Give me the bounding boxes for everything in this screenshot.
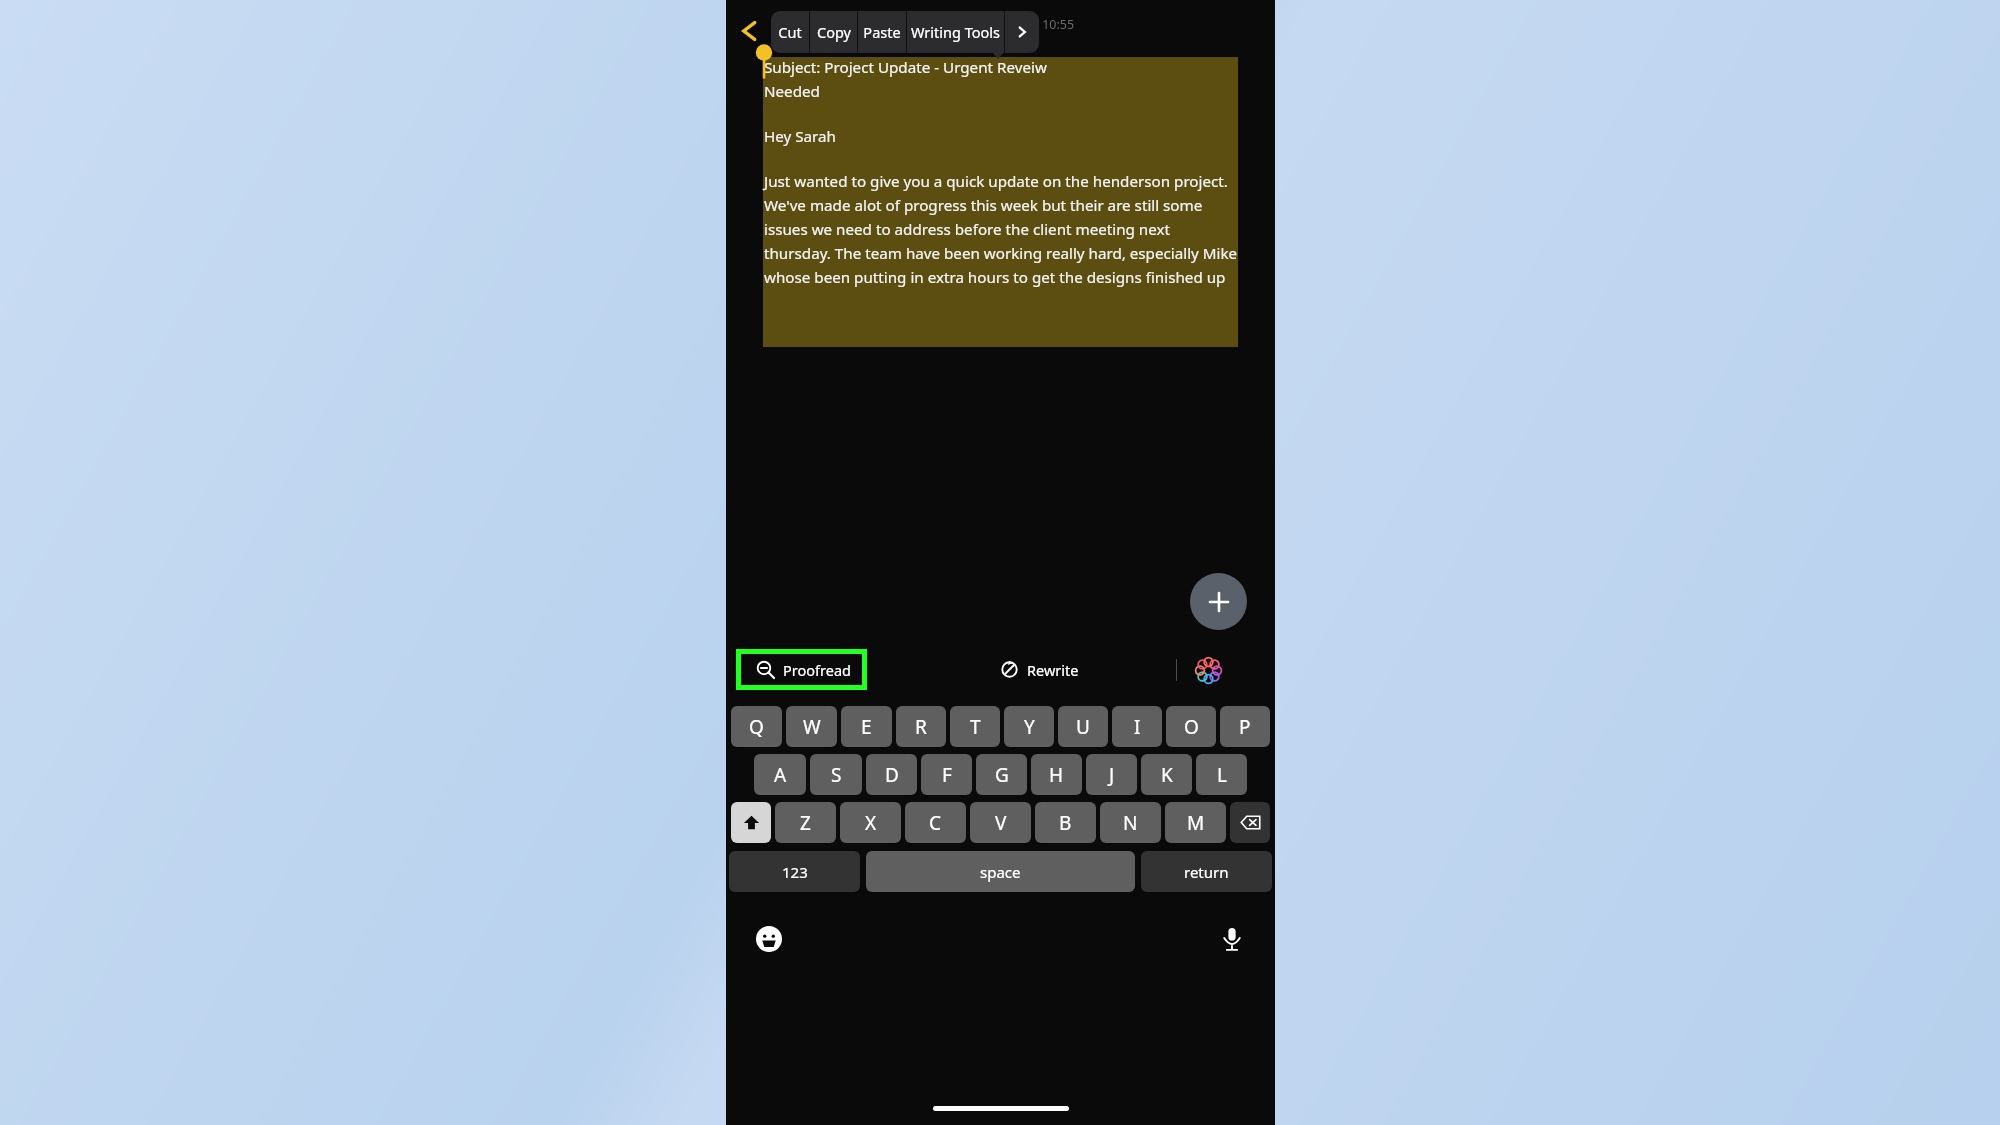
staticText: Writing Tools [911,22,1000,42]
button[interactable]: G [976,754,1027,795]
staticText: I [1134,714,1141,740]
staticText: N [1123,810,1138,836]
button[interactable]: S [810,754,862,795]
button[interactable]: Y [1004,706,1054,747]
button[interactable]: Back [736,16,762,46]
staticText: R [915,714,927,740]
staticText: L [1217,762,1227,788]
button[interactable]: Copy [810,11,857,53]
button[interactable]: space [866,851,1135,892]
staticText: K [1161,762,1173,788]
staticText: Cut [778,22,802,42]
staticText: V [995,810,1007,836]
button[interactable]: J [1086,754,1137,795]
staticText: D [885,762,899,788]
staticText: F [942,762,952,788]
button[interactable]: Writing Tools [907,11,1004,53]
staticText: J [1109,762,1115,788]
staticText: H [1049,762,1064,788]
staticText: Y [1024,714,1035,740]
staticText: M [1187,810,1205,836]
button[interactable]: A [754,754,806,795]
button[interactable]: I [1112,706,1162,747]
staticText: space [980,862,1021,882]
button[interactable]: Z [775,802,836,843]
button[interactable]: B [1035,802,1096,843]
staticText: B [1059,810,1072,836]
button[interactable]: Proofread [741,654,862,685]
staticText: Hey Sarah [764,126,836,147]
staticText: Subject: Project Update - Urgent Reveiw … [764,57,1047,102]
button[interactable]: W [786,706,837,747]
button[interactable]: Rewrite [1000,654,1079,685]
staticText: Z [800,810,811,836]
button[interactable]: H [1031,754,1082,795]
button[interactable]: Shift [731,802,771,843]
button[interactable]: V [970,802,1031,843]
staticText: Just wanted to give you a quick update o… [764,171,1238,288]
button[interactable]: Apple Intelligence [1192,654,1224,686]
button[interactable]: 123 [729,851,860,892]
staticText: Proofread [783,660,851,680]
button[interactable]: Paste [858,11,906,53]
button[interactable]: X [840,802,901,843]
staticText: 123 [782,862,808,882]
staticText: return [1184,862,1229,882]
staticText: E [861,714,872,740]
staticText: Rewrite [1027,660,1079,680]
staticText: A [774,762,787,788]
button[interactable]: E [841,706,892,747]
button[interactable]: M [1165,802,1226,843]
button[interactable]: Backspace [1230,802,1270,843]
button[interactable]: D [866,754,917,795]
button[interactable]: U [1058,706,1108,747]
button[interactable]: F [921,754,972,795]
staticText: Paste [863,22,901,42]
button[interactable]: T [950,706,1000,747]
staticText: Copy [817,22,851,42]
staticText: 30 October 2024 at 10:55 [927,16,1075,33]
staticText: T [970,714,981,740]
button[interactable]: return [1141,851,1272,892]
button[interactable]: L [1196,754,1247,795]
staticText: U [1076,714,1090,740]
button[interactable]: Dictation [1215,922,1249,956]
button[interactable]: Add [1190,573,1247,630]
button[interactable]: K [1141,754,1192,795]
button[interactable]: N [1100,802,1161,843]
staticText: S [831,762,842,788]
staticText: O [1184,714,1199,740]
staticText: P [1239,714,1251,740]
staticText: G [995,762,1009,788]
staticText: C [929,810,942,836]
button[interactable]: More [1005,11,1039,53]
button[interactable]: C [905,802,966,843]
button[interactable]: O [1166,706,1216,747]
staticText: X [865,810,877,836]
staticText: W [803,714,821,740]
button[interactable]: Cut [771,11,809,53]
staticText: Q [749,714,764,740]
button[interactable]: R [896,706,946,747]
button[interactable]: Emoji [752,922,786,956]
button[interactable]: Q [731,706,782,747]
button[interactable]: P [1220,706,1270,747]
